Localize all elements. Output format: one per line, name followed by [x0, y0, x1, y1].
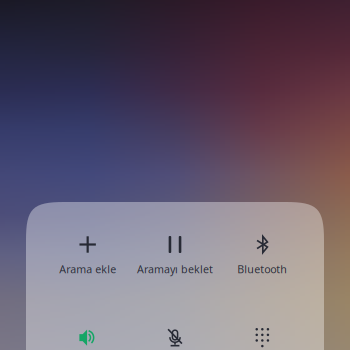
button[interactable]: Tuş takımı	[219, 317, 306, 350]
button[interactable]: Hoparlör	[44, 317, 131, 350]
button[interactable]: Bluetooth	[219, 224, 306, 286]
staticText: Aramayı beklet	[137, 262, 213, 276]
button[interactable]: Sessiz	[131, 317, 219, 350]
button[interactable]: Aramayı beklet	[131, 224, 219, 286]
button[interactable]: Arama ekle	[44, 224, 131, 286]
staticText: Arama ekle	[59, 262, 116, 276]
staticText: Bluetooth	[237, 262, 287, 276]
